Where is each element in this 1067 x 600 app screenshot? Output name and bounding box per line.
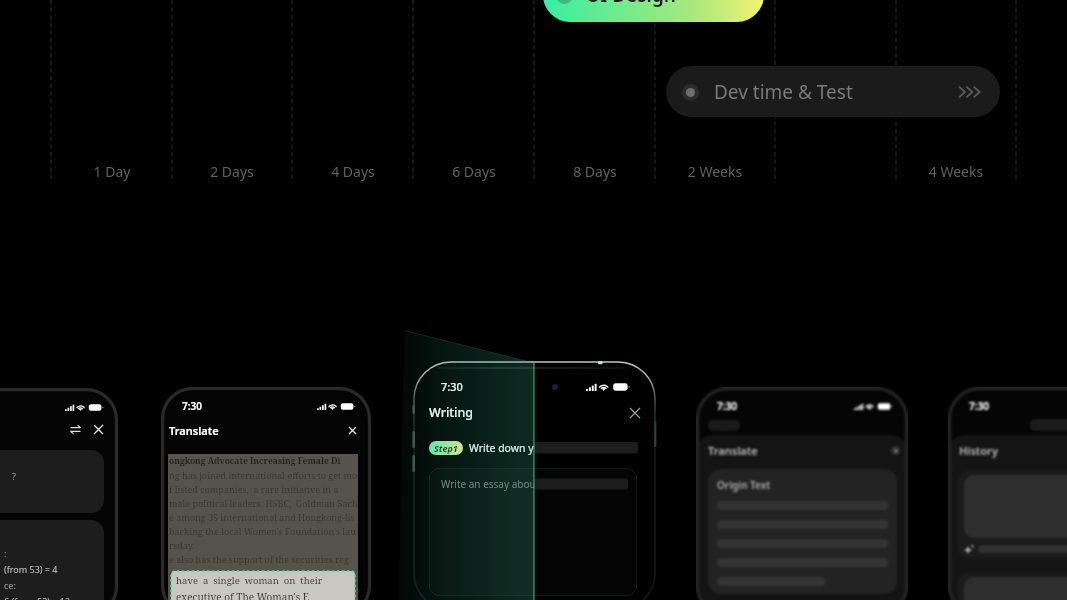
staticText: 8 Days [535, 162, 655, 181]
other: Close [629, 407, 641, 419]
staticText: Step1 [434, 442, 458, 454]
staticText: 1 Day [52, 162, 172, 181]
other: Close [93, 424, 104, 435]
staticText: Origin Text [717, 478, 771, 492]
staticText: Translate [708, 443, 758, 458]
staticText: ng has joined international efforts to g… [169, 469, 358, 481]
staticText: 7:30 [717, 399, 737, 413]
staticText: s ill nave the neel to consider the can [169, 567, 347, 579]
button[interactable] [958, 470, 1067, 559]
staticText: (from 53) = 4 [4, 563, 58, 575]
staticText: rsday. [169, 539, 195, 551]
other: Next [958, 85, 982, 99]
staticText: 4 Weeks [896, 162, 1016, 181]
staticText: f listed companies, a rare initiative in… [169, 483, 358, 495]
staticText: : [4, 547, 7, 559]
staticText: executive of The Woman's E [176, 590, 310, 600]
button[interactable]: Swap languages [70, 424, 81, 435]
staticText: male political leaders. HSBC, Goldman Sa… [169, 497, 358, 509]
other: Close [348, 426, 357, 435]
button[interactable] [958, 572, 1067, 600]
button[interactable]: : [0, 520, 104, 600]
button[interactable]: Dev time & Test [666, 66, 1000, 117]
staticText: Writing [429, 404, 474, 421]
staticText: 2 Weeks [655, 162, 775, 181]
staticText: UI Design [586, 0, 676, 8]
staticText: ce: [4, 579, 16, 591]
button[interactable]: UI Design [543, 0, 764, 22]
staticText: have a single woman on their [176, 574, 323, 587]
staticText: Dev time & Test [714, 79, 853, 105]
button[interactable]: Close [93, 424, 104, 435]
button[interactable]: ? [0, 450, 104, 513]
button[interactable]: Close [629, 407, 641, 419]
button[interactable]: Close [348, 426, 357, 435]
staticText: 7:30 [969, 399, 989, 413]
staticText: Write an essay abou [441, 477, 536, 491]
staticText: Translate [169, 423, 219, 438]
staticText: 6 Days [414, 162, 534, 181]
staticText: 7:30 [182, 399, 202, 413]
staticText: e among 35 international and Hongkong-li… [169, 511, 355, 523]
staticText: ? [12, 470, 16, 482]
staticText: History [959, 443, 998, 458]
staticText: backing the local Women's Foundation's l… [169, 525, 356, 537]
staticText: e also has the support of the securities… [169, 553, 349, 565]
button[interactable]: Close [891, 446, 900, 455]
staticText: 2 Days [172, 162, 292, 181]
button[interactable]: Write an essay abou [429, 468, 637, 596]
staticText: Write down you [469, 441, 547, 455]
staticText: ongkong Advocate Increasing Female Di [169, 455, 341, 467]
staticText: 4 Days [293, 162, 413, 181]
staticText: 7:30 [441, 379, 463, 394]
staticText: 6 (from 53) = 12 [4, 595, 71, 600]
